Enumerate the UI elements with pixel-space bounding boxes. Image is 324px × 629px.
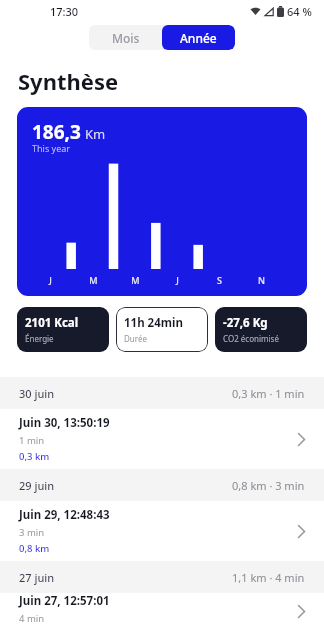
staticText: 4 min: [19, 612, 45, 625]
staticText: CO2 éconimisé: [223, 333, 279, 344]
staticText: Km: [85, 125, 106, 143]
staticText: 64 %: [287, 4, 312, 19]
staticText: Synthèse: [18, 66, 119, 96]
other: Voir le détail: [292, 522, 310, 540]
staticText: 17:30: [50, 4, 79, 19]
button[interactable]: Juin 30, 13:50:19: [0, 409, 324, 469]
staticText: 29 juin: [19, 478, 55, 493]
staticText: 186,3: [32, 119, 81, 145]
button[interactable]: 11h 24min: [116, 307, 208, 352]
staticText: J: [49, 274, 52, 286]
staticText: S: [217, 274, 222, 286]
button[interactable]: -27,6 Kg: [215, 307, 307, 352]
staticText: Durée: [124, 333, 147, 344]
staticText: 27 juin: [19, 570, 55, 585]
staticText: M: [89, 274, 98, 286]
staticText: 30 juin: [19, 386, 55, 401]
other: Voir le détail: [292, 602, 310, 620]
staticText: Énergie: [25, 333, 54, 344]
staticText: Juin 27, 12:57:01: [19, 593, 110, 609]
button[interactable]: 2101 Kcal: [17, 307, 109, 352]
staticText: 2101 Kcal: [25, 315, 79, 331]
staticText: 0,3 km: [19, 450, 50, 463]
staticText: 0,3 km · 1 min: [232, 386, 305, 401]
button[interactable]: 186,3: [17, 107, 307, 296]
button[interactable]: Juin 29, 12:48:43: [0, 501, 324, 561]
staticText: 1,1 km · 4 min: [232, 570, 305, 585]
staticText: 1 min: [19, 434, 45, 447]
staticText: 0,8 km: [19, 542, 50, 555]
staticText: J: [176, 274, 179, 286]
staticText: 11h 24min: [124, 315, 183, 331]
other: Voir le détail: [292, 430, 310, 448]
staticText: This year: [32, 142, 70, 154]
button[interactable]: Juin 27, 12:57:01: [0, 593, 324, 629]
staticText: -27,6 Kg: [223, 315, 268, 331]
button[interactable]: Année: [162, 25, 235, 50]
button[interactable]: Mois: [89, 25, 162, 50]
staticText: M: [131, 274, 140, 286]
staticText: Mois: [112, 30, 140, 46]
staticText: Année: [180, 30, 217, 46]
staticText: 3 min: [19, 526, 45, 539]
staticText: N: [258, 274, 265, 286]
staticText: Juin 29, 12:48:43: [19, 507, 110, 523]
staticText: 0,8 km · 3 min: [232, 478, 305, 493]
staticText: Juin 30, 13:50:19: [19, 415, 110, 431]
